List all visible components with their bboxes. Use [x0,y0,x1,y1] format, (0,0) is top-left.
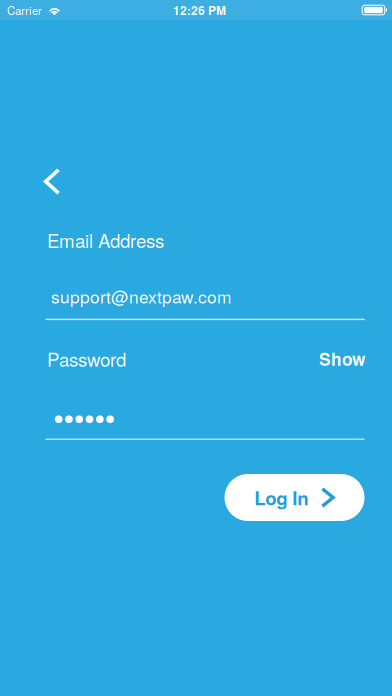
staticText: Password [47,345,126,372]
staticText: Show [319,346,365,371]
staticText: 12:26 PM [173,1,226,19]
staticText: support@nextpaw.com [51,283,231,308]
button[interactable]: support@nextpaw.com [0,0,365,323]
staticText: Carrier [7,2,42,18]
button[interactable]: Log In [224,474,364,521]
staticText: Log In [254,484,308,511]
staticText: Email Address [47,226,164,253]
button[interactable]: Password [0,0,365,441]
button[interactable]: Show [312,340,372,377]
button[interactable]: Back [0,0,79,208]
